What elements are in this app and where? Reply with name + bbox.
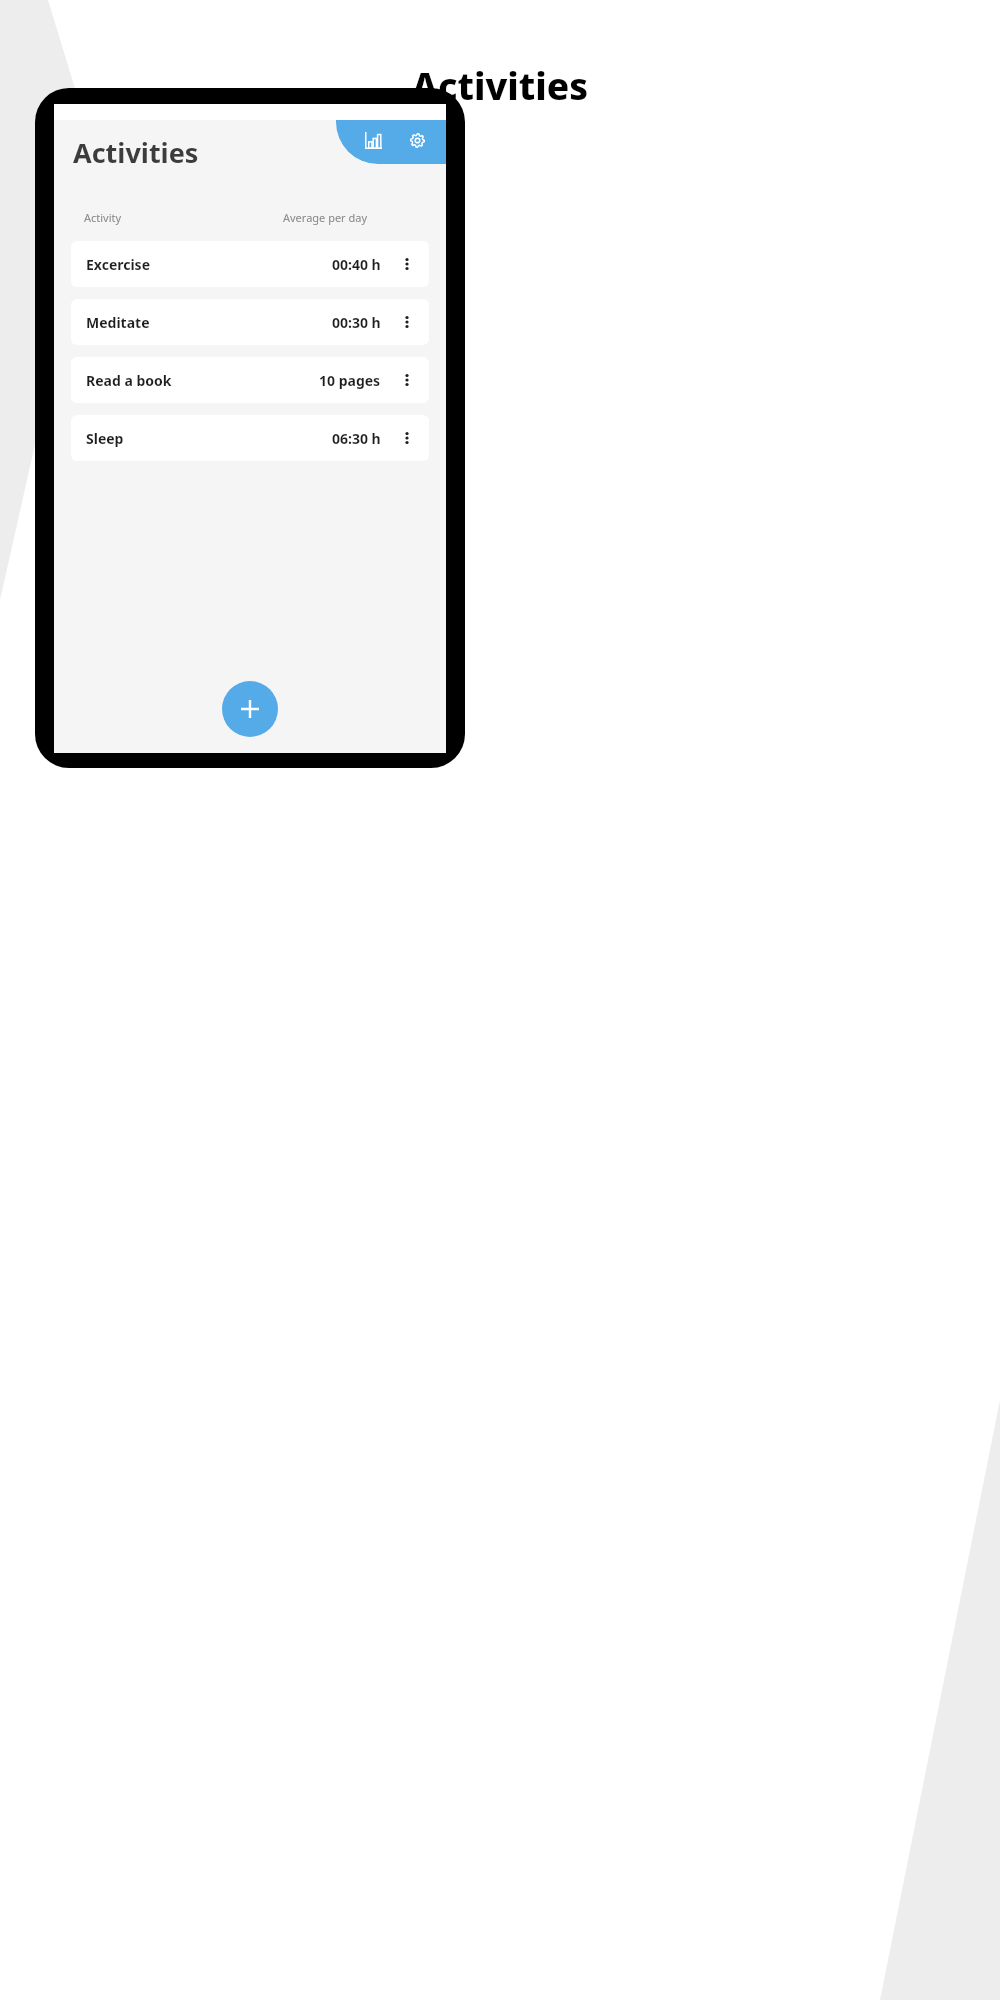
staticText: 00:40 h: [332, 255, 381, 274]
button[interactable]: More options: [395, 310, 419, 334]
staticText: 00:30 h: [332, 313, 381, 332]
staticText: Activities: [0, 60, 1000, 110]
staticText: Read a book: [86, 371, 172, 390]
button[interactable]: Meditate: [71, 299, 429, 345]
button[interactable]: Add activity: [222, 681, 278, 737]
staticText: Sleep: [86, 429, 124, 448]
button[interactable]: Sleep: [71, 415, 429, 461]
staticText: Excercise: [86, 255, 151, 274]
staticText: Meditate: [86, 313, 150, 332]
staticText: Activity: [84, 210, 122, 225]
staticText: 10 pages: [319, 371, 381, 390]
button[interactable]: Excercise: [71, 241, 429, 287]
button[interactable]: Settings: [402, 125, 432, 155]
button[interactable]: More options: [395, 368, 419, 392]
button[interactable]: More options: [395, 426, 419, 450]
button[interactable]: Statistics: [358, 125, 388, 155]
staticText: Average per day: [283, 210, 368, 225]
staticText: Activities: [73, 134, 199, 171]
staticText: 06:30 h: [332, 429, 381, 448]
button[interactable]: More options: [395, 252, 419, 276]
button[interactable]: Read a book: [71, 357, 429, 403]
